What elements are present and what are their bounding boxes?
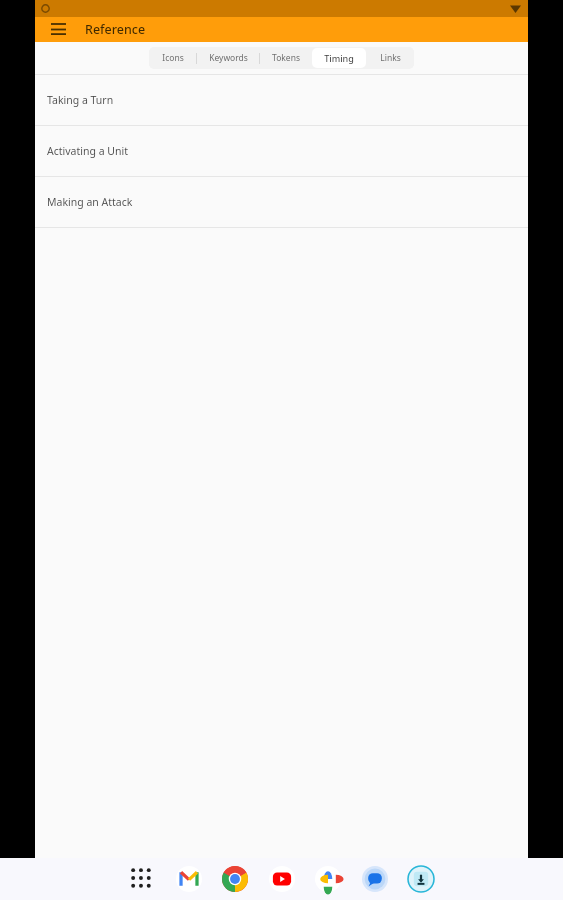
button[interactable]: Google Photos: [312, 863, 344, 895]
button[interactable]: Activating a Unit: [35, 126, 528, 176]
button[interactable]: Chrome: [219, 863, 251, 895]
button[interactable]: Making an Attack: [35, 177, 528, 227]
button[interactable]: Downloads: [405, 863, 437, 895]
button[interactable]: Tokens: [260, 47, 312, 69]
staticText: Tokens: [272, 52, 300, 64]
staticText: Icons: [162, 52, 184, 64]
staticText: Links: [380, 52, 401, 64]
button[interactable]: All apps: [126, 863, 158, 895]
button[interactable]: Open navigation menu: [44, 17, 72, 42]
staticText: Taking a Turn: [47, 93, 114, 107]
staticText: Timing: [324, 52, 354, 64]
button[interactable]: Icons: [149, 47, 196, 69]
button[interactable]: Keywords: [197, 47, 259, 69]
button[interactable]: YouTube: [266, 863, 298, 895]
button[interactable]: Timing: [312, 48, 366, 68]
staticText: Keywords: [209, 52, 248, 64]
staticText: Making an Attack: [47, 195, 133, 209]
staticText: Activating a Unit: [47, 144, 128, 158]
button[interactable]: Taking a Turn: [35, 75, 528, 125]
button[interactable]: Messages: [359, 863, 391, 895]
button[interactable]: Links: [366, 47, 414, 69]
button[interactable]: Gmail: [173, 863, 205, 895]
staticText: Reference: [85, 21, 146, 38]
